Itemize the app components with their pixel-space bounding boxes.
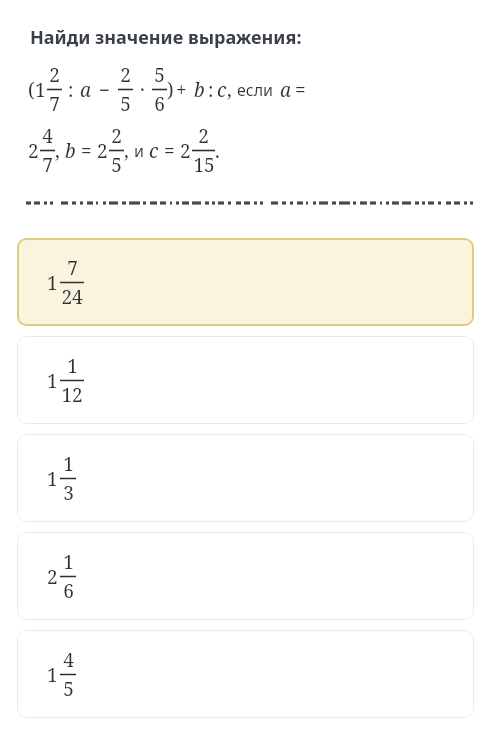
staticText: ( [28, 77, 35, 103]
staticText: 1 [47, 466, 58, 492]
staticText: 7 [49, 91, 60, 117]
button[interactable]: 2 [17, 532, 474, 620]
staticText: Найди значение выражения: [30, 25, 302, 50]
button[interactable]: 1 [17, 434, 474, 522]
staticText: 2 [97, 138, 108, 164]
staticText: 2 [111, 123, 122, 149]
staticText: 7 [67, 255, 78, 281]
staticText: c [149, 138, 159, 164]
staticText: 2 [49, 62, 60, 88]
staticText: = [81, 138, 92, 164]
staticText: если [237, 79, 274, 101]
staticText: 1 [67, 353, 78, 379]
staticText: 5 [111, 152, 122, 178]
staticText: 15 [193, 152, 215, 178]
staticText: + [176, 77, 187, 103]
staticText: b [65, 138, 76, 164]
button[interactable]: 1 [17, 238, 474, 326]
staticText: 4 [42, 123, 53, 149]
staticText: 4 [63, 647, 74, 673]
staticText: 1 [47, 270, 58, 296]
staticText: , [55, 138, 60, 164]
staticText: 3 [63, 480, 74, 506]
staticText: , [227, 77, 232, 103]
staticText: − [99, 77, 111, 103]
staticText: . [215, 138, 220, 164]
staticText: и [134, 140, 144, 162]
staticText: 1 [47, 662, 58, 688]
staticText: c [217, 77, 227, 103]
staticText: 2 [198, 123, 209, 149]
button[interactable]: 1 [17, 630, 474, 718]
staticText: = [295, 77, 306, 103]
staticText: a [280, 77, 292, 103]
staticText: 1 [35, 77, 46, 103]
staticText: 6 [63, 578, 74, 604]
staticText: 2 [28, 138, 39, 164]
staticText: = [164, 138, 175, 164]
staticText: 2 [120, 62, 131, 88]
staticText: , [124, 138, 129, 164]
staticText: 2 [180, 138, 191, 164]
staticText: 12 [61, 382, 83, 408]
staticText: 6 [154, 91, 165, 117]
staticText: 1 [63, 549, 74, 575]
staticText: : [68, 77, 74, 103]
staticText: 5 [120, 91, 131, 117]
staticText: : [208, 77, 214, 103]
staticText: ) [167, 77, 174, 103]
staticText: 1 [47, 368, 58, 394]
staticText: a [80, 77, 92, 103]
staticText: 1 [63, 451, 74, 477]
staticText: 7 [42, 152, 53, 178]
button[interactable]: 1 [17, 336, 474, 424]
staticText: · [140, 77, 145, 103]
staticText: 5 [63, 676, 74, 702]
staticText: b [194, 77, 205, 103]
staticText: 5 [154, 62, 165, 88]
staticText: 24 [61, 284, 83, 310]
staticText: 2 [47, 564, 58, 590]
